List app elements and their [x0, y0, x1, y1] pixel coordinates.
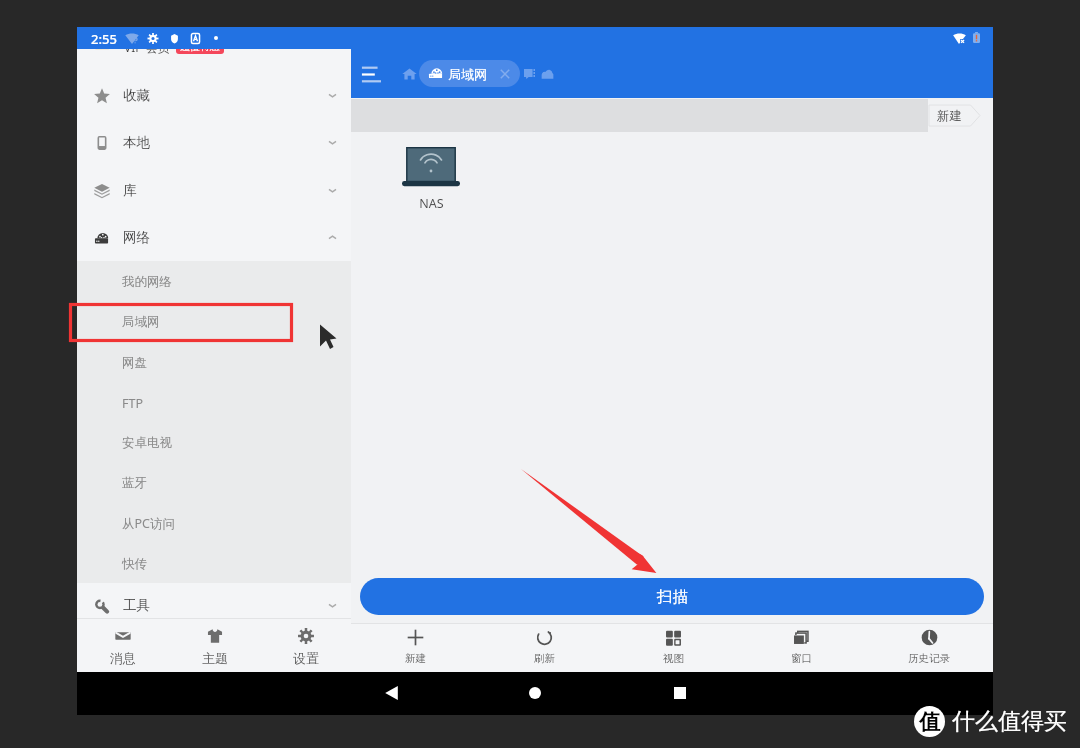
button[interactable]: 本地 [77, 119, 351, 166]
staticText: 刷新 [534, 652, 555, 665]
staticText: 窗口 [791, 652, 812, 665]
staticText: FTP [122, 395, 144, 412]
staticText: 局域网 [448, 66, 487, 82]
staticText: 从PC访问 [122, 515, 175, 532]
staticText: 2:55 [91, 30, 117, 48]
button[interactable]: 窗口 [737, 623, 865, 672]
button[interactable]: Home [520, 678, 550, 708]
button[interactable]: FTP [77, 383, 351, 423]
button[interactable]: 消息 [77, 618, 169, 673]
button[interactable]: VIP 会员 [77, 27, 351, 70]
button[interactable]: 设置 [260, 618, 351, 673]
button[interactable]: 网络 [77, 214, 351, 261]
button[interactable]: 网盘 [77, 343, 351, 383]
staticText: 网盘 [122, 355, 147, 371]
button[interactable]: 主题 [169, 618, 260, 673]
button[interactable]: 从PC访问 [77, 503, 351, 543]
staticText: 新建 [937, 108, 962, 124]
staticText: 主题 [202, 650, 228, 666]
button[interactable]: 局域网 [77, 302, 351, 342]
button[interactable]: 局域网 [419, 60, 520, 87]
button[interactable]: Menu [357, 61, 387, 87]
staticText: 安卓电视 [122, 435, 172, 451]
button[interactable]: Tabs [520, 64, 539, 83]
staticText: 快传 [122, 556, 147, 572]
staticText: 蓝牙 [122, 475, 147, 491]
button[interactable]: 新建 [351, 623, 480, 672]
staticText: 库 [123, 182, 137, 199]
staticText: 工具 [123, 597, 150, 614]
button[interactable]: 扫描 [360, 578, 984, 615]
staticText: NAS [419, 195, 444, 212]
staticText: 本地 [123, 134, 150, 151]
staticText: VIP 会员 [124, 39, 170, 55]
staticText: 我的网络 [122, 274, 172, 290]
button[interactable]: Back [376, 678, 406, 708]
button[interactable]: 安卓电视 [77, 423, 351, 463]
staticText: 超值特惠 [180, 40, 220, 53]
staticText: 网络 [123, 229, 150, 246]
staticText: 视图 [663, 652, 684, 665]
button[interactable]: Cloud [537, 64, 557, 84]
staticText: 扫描 [657, 587, 688, 607]
staticText: 值 [919, 709, 940, 735]
staticText: 设置 [293, 650, 319, 666]
button[interactable]: 新建 [929, 105, 980, 126]
staticText: 消息 [110, 650, 136, 666]
button[interactable]: 视图 [609, 623, 737, 672]
button[interactable]: Home [396, 61, 422, 87]
button[interactable]: 工具 [77, 582, 351, 629]
button[interactable]: Recents [665, 678, 695, 708]
staticText: 什么值得买 [952, 707, 1067, 736]
button[interactable]: 我的网络 [77, 262, 351, 302]
button[interactable]: 库 [77, 167, 351, 214]
staticText: 新建 [405, 652, 426, 665]
staticText: 局域网 [122, 314, 160, 330]
staticText: 历史记录 [908, 652, 950, 665]
button[interactable]: 收藏 [77, 72, 351, 119]
button[interactable]: 蓝牙 [77, 463, 351, 503]
staticText: 收藏 [123, 87, 150, 104]
button[interactable]: 历史记录 [865, 623, 993, 672]
button[interactable]: 刷新 [480, 623, 609, 672]
button[interactable]: 快传 [77, 544, 351, 584]
